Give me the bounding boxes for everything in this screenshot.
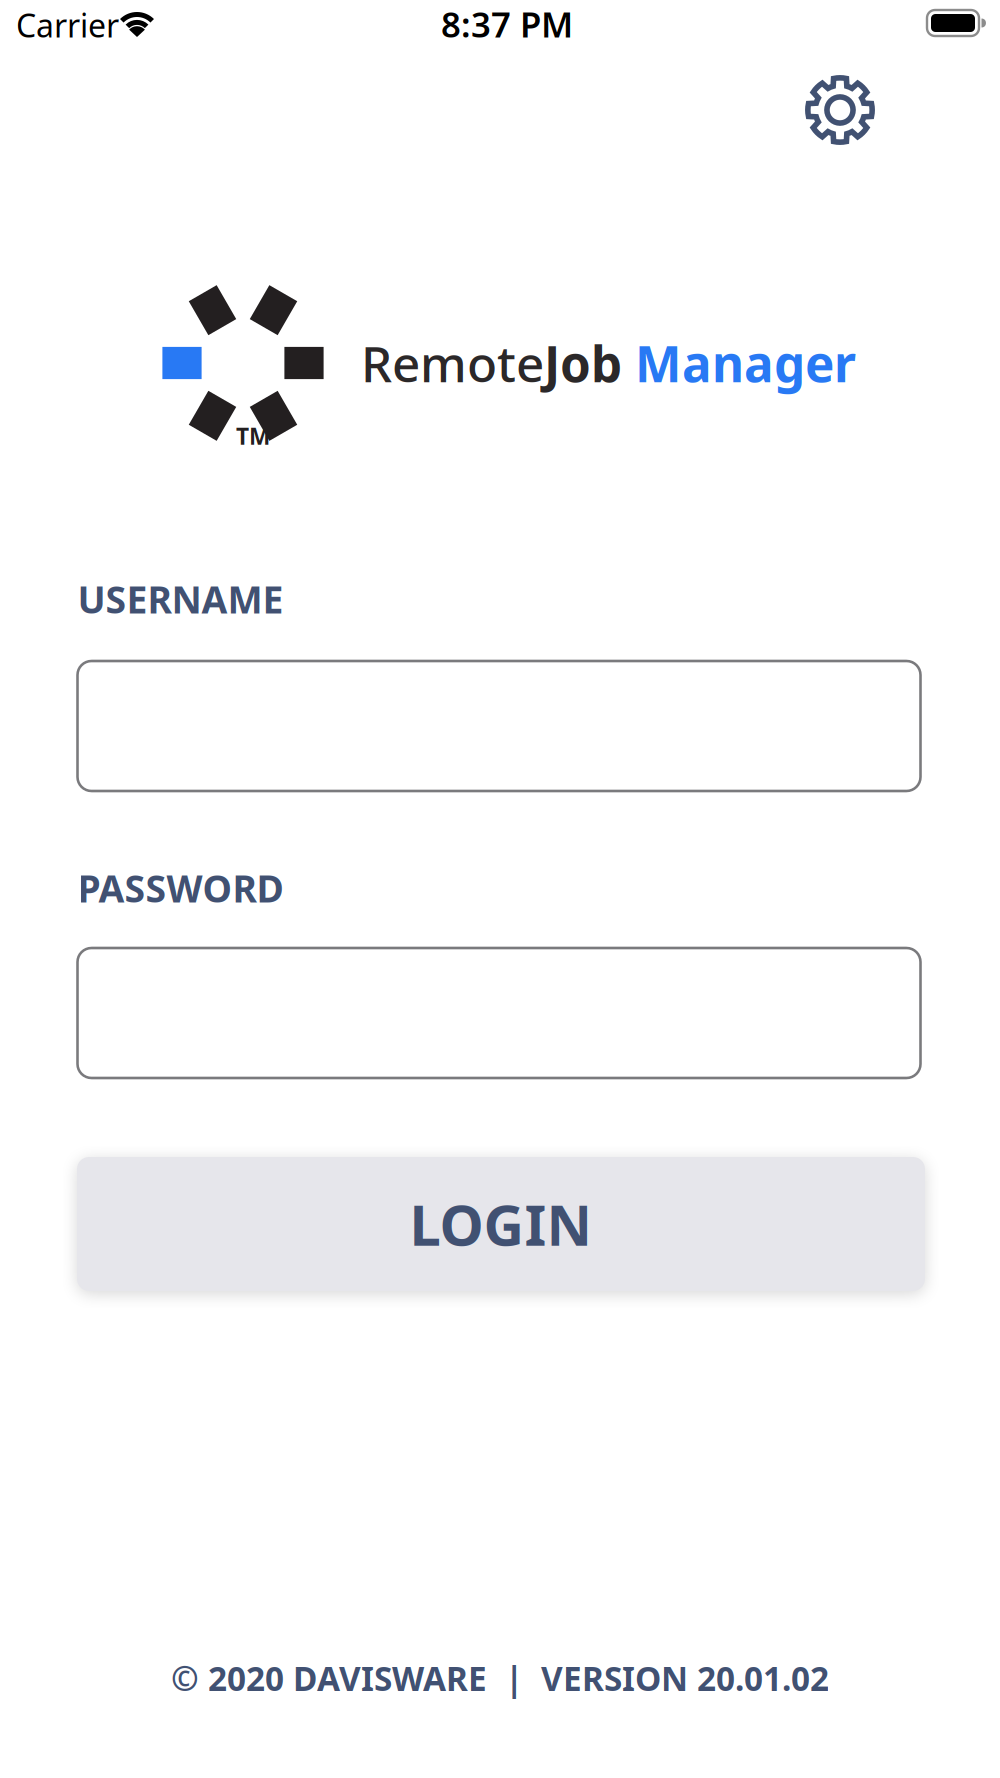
staticText: Manager bbox=[622, 330, 856, 396]
staticText: 8:37 PM bbox=[441, 1, 573, 47]
staticText: Job bbox=[544, 330, 622, 396]
button[interactable]: LOGIN bbox=[77, 1157, 925, 1291]
button[interactable]: Username bbox=[77, 661, 920, 791]
staticText: TM bbox=[236, 421, 270, 451]
staticText: Remote bbox=[361, 330, 544, 396]
staticText: © 2020 DAVISWARE | VERSION 20.01.02 bbox=[171, 1656, 829, 1700]
staticText: PASSWORD bbox=[77, 863, 283, 913]
staticText: LOGIN bbox=[409, 1187, 592, 1261]
staticText: Carrier bbox=[16, 4, 119, 46]
button[interactable]: Settings bbox=[806, 76, 873, 143]
button[interactable]: Password bbox=[77, 948, 920, 1078]
staticText: USERNAME bbox=[77, 574, 283, 624]
